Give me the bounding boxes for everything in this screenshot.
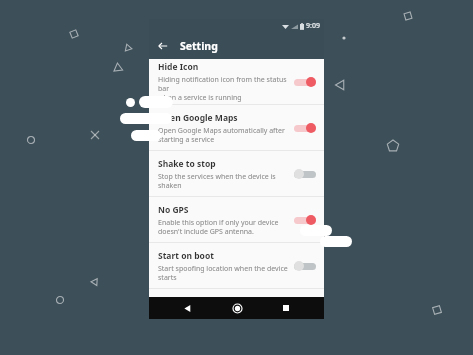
staticText: 9:09: [306, 21, 320, 31]
staticText: Hide Icon: [158, 61, 199, 73]
button[interactable]: Back: [154, 37, 172, 55]
button[interactable]: Toggle off: [293, 167, 317, 181]
button[interactable]: Home: [226, 297, 248, 319]
staticText: Hiding notification icon from the status…: [158, 75, 289, 102]
staticText: Start on boot: [158, 250, 214, 262]
button[interactable]: Toggle off: [293, 259, 317, 273]
button[interactable]: Toggle on: [293, 213, 317, 227]
button[interactable]: Recents: [275, 297, 297, 319]
button[interactable]: Start on boot: [149, 243, 324, 288]
staticText: Open Google Maps automatically after sta…: [158, 126, 285, 144]
button[interactable]: Toggle on: [293, 75, 317, 89]
button[interactable]: No GPS: [149, 197, 324, 242]
staticText: No GPS: [158, 204, 189, 216]
button[interactable]: Back: [176, 297, 198, 319]
staticText: Enable this option if only your device d…: [158, 218, 279, 236]
staticText: Open Google Maps: [158, 112, 238, 124]
button[interactable]: Shake to stop: [149, 151, 324, 196]
button[interactable]: Hide Icon: [149, 59, 324, 104]
button[interactable]: Open Google Maps: [149, 105, 324, 150]
staticText: Stop the services when the device is sha…: [158, 172, 276, 190]
staticText: Shake to stop: [158, 158, 216, 170]
staticText: Start spoofing location when the device …: [158, 264, 288, 282]
button[interactable]: Toggle on: [293, 121, 317, 135]
staticText: Setting: [180, 39, 218, 53]
